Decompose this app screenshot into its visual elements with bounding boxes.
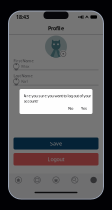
staticText: Yes bbox=[81, 105, 87, 111]
staticText: Max bbox=[21, 63, 29, 69]
button[interactable]: Calendar bbox=[28, 173, 47, 187]
button[interactable]: Home bbox=[9, 173, 28, 187]
staticText: Save bbox=[50, 140, 62, 147]
staticText: Logout bbox=[47, 156, 64, 163]
button[interactable]: Search bbox=[65, 173, 84, 187]
button[interactable]: Shop bbox=[47, 173, 65, 187]
button[interactable]: Yes bbox=[79, 104, 88, 112]
staticText: Karl bbox=[21, 79, 28, 84]
button[interactable]: Change profile photo bbox=[45, 35, 67, 57]
staticText: Are you sure you want to log out of your… bbox=[23, 93, 91, 104]
staticText: No bbox=[68, 105, 73, 111]
staticText: Last Name bbox=[13, 73, 32, 78]
button[interactable]: Save bbox=[13, 137, 98, 149]
button[interactable]: No bbox=[66, 104, 74, 112]
button[interactable]: Logout bbox=[13, 153, 98, 165]
staticText: First Name bbox=[13, 58, 33, 63]
staticText: Profile bbox=[48, 25, 64, 32]
staticText: 18:43 bbox=[16, 13, 29, 21]
button[interactable]: Profile bbox=[84, 173, 103, 187]
